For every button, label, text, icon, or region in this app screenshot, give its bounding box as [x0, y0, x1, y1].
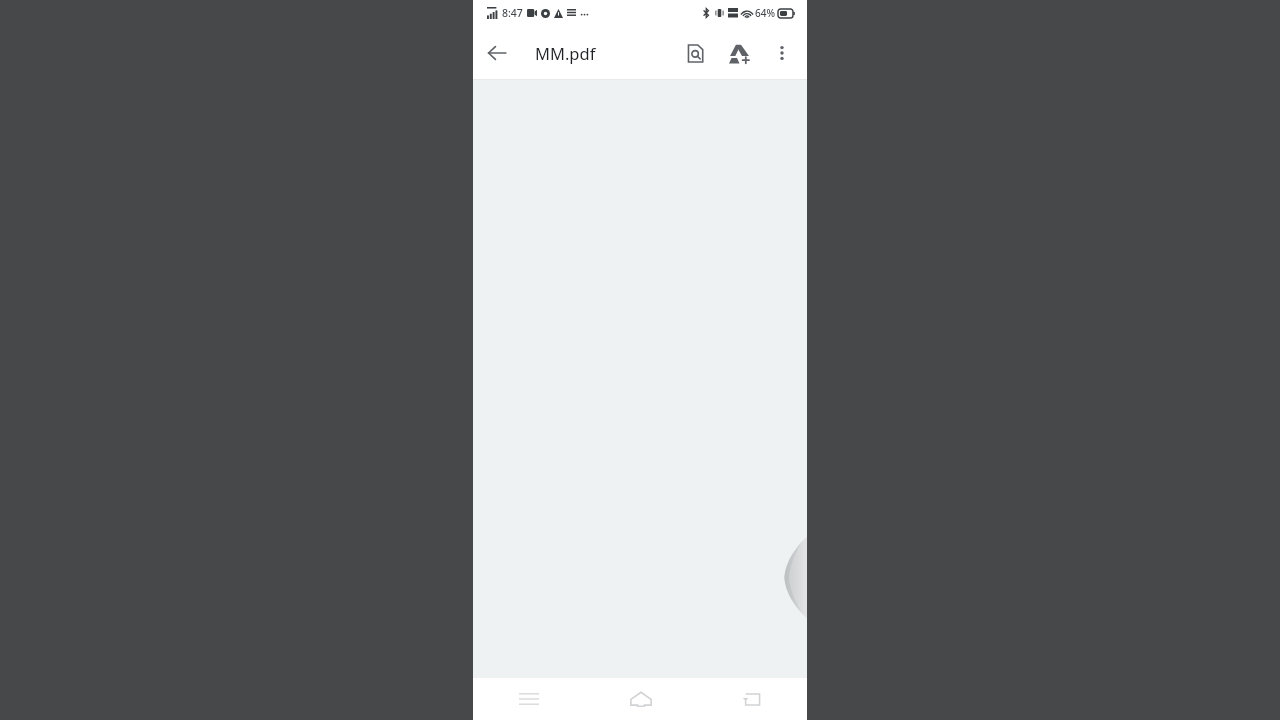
button[interactable]: Add to Drive	[717, 31, 761, 75]
button[interactable]: Home	[585, 678, 696, 720]
staticText: 64%	[755, 6, 775, 20]
staticText: MM.pdf	[535, 42, 596, 64]
button[interactable]: More options	[761, 32, 803, 74]
button[interactable]: Back	[696, 678, 807, 720]
button[interactable]: Back	[473, 29, 521, 77]
button[interactable]: Scroll handle	[780, 535, 807, 620]
button[interactable]: Find in document	[673, 31, 717, 75]
button[interactable]: Recent apps	[473, 678, 585, 720]
staticText: 8:47	[502, 6, 523, 20]
